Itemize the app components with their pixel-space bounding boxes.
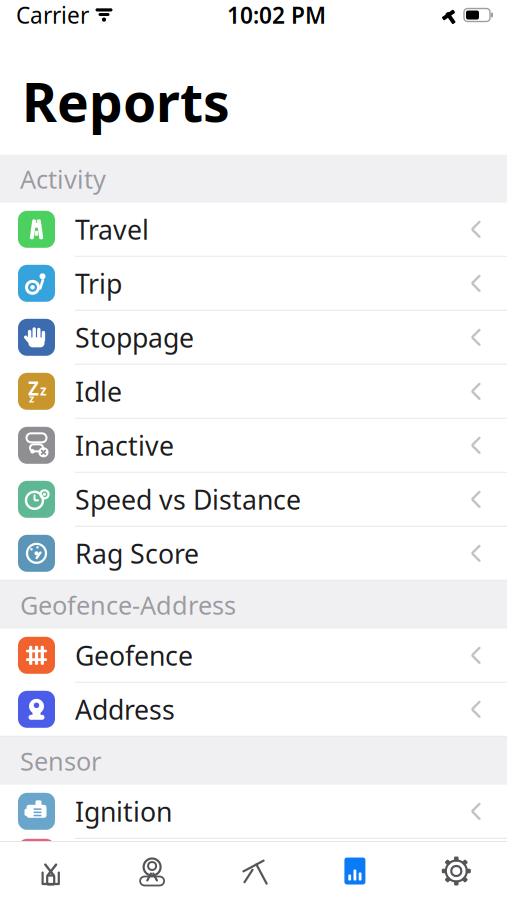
staticText: Carrier [16, 0, 89, 30]
button[interactable]: Places [101, 842, 203, 900]
staticText: Sensor [20, 744, 101, 778]
staticText: Stoppage [75, 320, 194, 355]
button[interactable]: Address [0, 683, 507, 737]
button[interactable]: Rag Score [0, 527, 507, 581]
staticText: Idle [75, 374, 122, 409]
staticText: z [40, 381, 47, 399]
staticText: Inactive [75, 428, 174, 463]
staticText: 10:02 PM [227, 0, 326, 30]
staticText: Reports [22, 66, 230, 137]
staticText: Address [75, 692, 175, 727]
button[interactable]: Ignition [0, 785, 507, 839]
staticText: Geofence [75, 638, 193, 673]
staticText: Speed vs Distance [75, 482, 301, 517]
button[interactable]: Stoppage [0, 311, 507, 365]
staticText: Travel [75, 212, 149, 247]
button[interactable]: Settings [406, 842, 507, 900]
button[interactable]: Home [0, 842, 101, 900]
staticText: Trip [75, 266, 122, 301]
staticText: Geofence-Address [20, 588, 236, 622]
button[interactable]: Reports [304, 842, 406, 900]
button[interactable]: Inactive [0, 419, 507, 473]
staticText: Ignition [75, 794, 172, 829]
button[interactable]: Travel [0, 203, 507, 257]
button[interactable]: Z [0, 365, 507, 419]
button[interactable]: Navigate [203, 842, 304, 900]
staticText: Rag Score [75, 536, 199, 571]
staticText: Activity [20, 162, 106, 196]
button[interactable]: Speed vs Distance [0, 473, 507, 527]
button[interactable]: Trip [0, 257, 507, 311]
button[interactable]: Geofence [0, 629, 507, 683]
staticText: Z [28, 376, 39, 401]
staticText: z [29, 391, 34, 405]
